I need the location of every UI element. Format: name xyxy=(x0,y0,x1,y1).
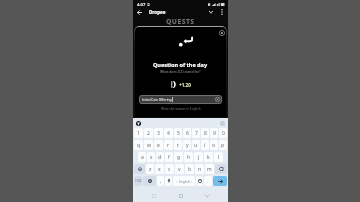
staticText: g xyxy=(177,154,181,161)
button[interactable]: v xyxy=(175,164,184,174)
button[interactable]: . xyxy=(204,176,212,186)
staticText: 0 xyxy=(222,130,225,137)
staticText: Question of the day xyxy=(153,61,208,68)
staticText: z xyxy=(149,166,152,173)
staticText: r xyxy=(167,142,170,149)
button[interactable]: n xyxy=(195,164,204,174)
button[interactable]: Shift xyxy=(134,164,145,174)
button[interactable]: j xyxy=(194,152,203,162)
button[interactable]: Expand xyxy=(207,8,215,16)
staticText: b xyxy=(188,166,192,173)
staticText: m xyxy=(207,166,212,173)
button[interactable]: Recent apps xyxy=(148,190,160,202)
button[interactable]: w xyxy=(144,140,153,150)
button[interactable]: 8 xyxy=(201,128,209,138)
button[interactable]: , xyxy=(157,176,164,186)
staticText: e xyxy=(157,142,160,149)
button[interactable]: p xyxy=(219,140,227,150)
button[interactable]: t xyxy=(174,140,182,150)
button[interactable]: Backspace xyxy=(215,164,227,174)
button[interactable]: b xyxy=(185,164,194,174)
staticText: p xyxy=(221,142,225,149)
button[interactable]: e xyxy=(154,140,163,150)
button[interactable]: i xyxy=(201,140,209,150)
button[interactable]: o xyxy=(210,140,218,150)
staticText: › xyxy=(191,179,193,184)
button[interactable]: u xyxy=(192,140,200,150)
button[interactable]: d xyxy=(156,152,164,162)
button[interactable]: 0 xyxy=(219,128,227,138)
staticText: k xyxy=(207,154,210,161)
button[interactable]: Emoji xyxy=(196,176,203,186)
button[interactable]: c xyxy=(165,164,174,174)
button[interactable]: Back xyxy=(201,190,213,202)
button[interactable]: 7 xyxy=(192,128,200,138)
button[interactable]: l xyxy=(214,152,223,162)
staticText: 1 xyxy=(137,130,140,137)
staticText: a xyxy=(141,154,144,161)
button[interactable]: s xyxy=(147,152,155,162)
button[interactable]: 5 xyxy=(174,128,182,138)
button[interactable]: g xyxy=(174,152,183,162)
button[interactable]: f xyxy=(165,152,173,162)
button[interactable]: h xyxy=(184,152,193,162)
staticText: y xyxy=(186,142,189,149)
staticText: o xyxy=(212,142,216,149)
button[interactable]: Close xyxy=(218,29,225,36)
staticText: Dropee xyxy=(149,9,166,15)
button[interactable]: k xyxy=(204,152,213,162)
button[interactable]: m xyxy=(205,164,214,174)
staticText: 4:37 xyxy=(137,2,146,8)
staticText: f xyxy=(168,154,170,161)
button[interactable]: 2 xyxy=(144,128,153,138)
staticText: 2 xyxy=(147,130,150,137)
staticText: Initial Coin Offering xyxy=(142,98,172,102)
button[interactable]: Home xyxy=(175,190,187,202)
staticText: 9 xyxy=(213,130,216,137)
button[interactable]: Settings xyxy=(219,120,225,126)
button[interactable]: Space xyxy=(173,176,195,186)
staticText: 3 xyxy=(157,130,160,137)
button[interactable]: 4 xyxy=(164,128,173,138)
button[interactable]: 6 xyxy=(183,128,191,138)
button[interactable]: q xyxy=(134,140,143,150)
button[interactable]: 9 xyxy=(210,128,218,138)
staticText: 4 xyxy=(167,130,170,137)
button[interactable]: r xyxy=(164,140,173,150)
staticText: Write the answer in English xyxy=(161,107,201,111)
staticText: t xyxy=(177,142,179,149)
button[interactable]: More options xyxy=(218,8,226,16)
staticText: 6 xyxy=(186,130,189,137)
staticText: d xyxy=(158,154,162,161)
staticText: What does ICO stand for? xyxy=(160,69,201,74)
staticText: w xyxy=(147,142,151,149)
staticText: q xyxy=(137,142,141,149)
button[interactable]: a xyxy=(138,152,146,162)
button[interactable]: z xyxy=(146,164,154,174)
staticText: s xyxy=(150,154,153,161)
button[interactable]: Enter xyxy=(213,176,227,186)
button[interactable]: y xyxy=(183,140,191,150)
staticText: c xyxy=(168,166,171,173)
staticText: 8 xyxy=(204,130,207,137)
button[interactable]: 3 xyxy=(154,128,163,138)
staticText: ?123 xyxy=(135,179,142,183)
staticText: 5 xyxy=(177,130,180,137)
staticText: English xyxy=(179,180,190,184)
button[interactable]: Initial Coin Offering xyxy=(139,95,222,104)
button[interactable]: Voice input xyxy=(165,176,172,186)
staticText: n xyxy=(198,166,202,173)
staticText: u xyxy=(194,142,198,149)
button[interactable]: Back xyxy=(135,8,143,16)
staticText: i xyxy=(204,142,206,149)
button[interactable]: Change language xyxy=(143,176,156,186)
staticText: l xyxy=(218,154,220,161)
button[interactable]: Google xyxy=(136,121,141,126)
staticText: j xyxy=(198,154,200,161)
staticText: , xyxy=(160,178,162,184)
button[interactable]: ?123 xyxy=(134,176,142,186)
button[interactable]: 1 xyxy=(134,128,143,138)
button[interactable]: x xyxy=(155,164,164,174)
staticText: h xyxy=(187,154,191,161)
staticText: ‹ xyxy=(176,179,178,184)
